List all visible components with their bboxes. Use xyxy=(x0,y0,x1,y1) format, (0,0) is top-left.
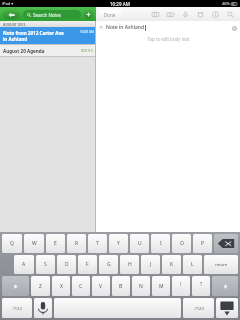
button[interactable]: O xyxy=(172,234,191,253)
staticText: ? xyxy=(200,281,203,288)
button[interactable]: August 20 Agenda xyxy=(0,45,96,56)
staticText: L xyxy=(191,261,194,268)
button[interactable]: S xyxy=(36,255,55,274)
button[interactable]: .?123 xyxy=(2,298,32,318)
staticText: A xyxy=(22,261,26,268)
button[interactable]: Delete xyxy=(196,10,205,19)
button[interactable]: W xyxy=(24,234,44,253)
button[interactable]: Z xyxy=(31,276,50,296)
button[interactable]: Backspace xyxy=(214,234,238,253)
button[interactable]: Search in note xyxy=(226,10,235,19)
staticText: E xyxy=(54,240,57,247)
staticText: Note in Ashland xyxy=(106,24,145,31)
staticText: Z xyxy=(39,283,42,290)
staticText: 10:29 AM xyxy=(80,30,94,34)
staticText: .?123 xyxy=(194,306,204,311)
staticText: August 20 Agenda xyxy=(3,48,81,54)
staticText: P xyxy=(201,240,205,247)
button[interactable]: Hide keyboard xyxy=(216,298,238,318)
button[interactable]: Search Notes xyxy=(23,10,81,19)
staticText: G xyxy=(107,261,111,268)
button[interactable]: J xyxy=(141,255,160,274)
staticText: V xyxy=(99,283,103,290)
button[interactable]: L xyxy=(183,255,202,274)
staticText: D xyxy=(65,261,69,268)
staticText: return xyxy=(215,262,228,268)
button[interactable]: B xyxy=(112,276,130,296)
button[interactable]: New note xyxy=(84,10,93,19)
staticText: M xyxy=(159,283,164,290)
button[interactable]: H xyxy=(120,255,139,274)
button[interactable]: M xyxy=(152,276,170,296)
button[interactable]: R xyxy=(67,234,86,253)
button[interactable]: I xyxy=(151,234,170,253)
button[interactable]: G xyxy=(99,255,118,274)
staticText: R xyxy=(75,240,79,247)
button[interactable]: N xyxy=(132,276,150,296)
button[interactable] xyxy=(54,298,181,318)
button[interactable]: ? xyxy=(192,276,210,296)
button[interactable]: F xyxy=(78,255,97,274)
button[interactable]: Shift xyxy=(212,276,238,296)
button[interactable]: Camera xyxy=(166,10,175,19)
staticText: Q xyxy=(10,240,14,247)
button[interactable]: Dictate xyxy=(34,298,52,318)
button[interactable]: D xyxy=(57,255,76,274)
staticText: Search Notes xyxy=(33,12,61,18)
staticText: Tap to edit body text xyxy=(147,36,190,42)
button[interactable]: C xyxy=(72,276,90,296)
button[interactable]: Note from 2012 Carter Ave xyxy=(0,27,96,44)
staticText: Done xyxy=(104,12,116,18)
button[interactable]: return xyxy=(204,255,238,274)
staticText: in Ashland xyxy=(3,36,28,42)
button[interactable]: Info xyxy=(211,10,220,19)
button[interactable]: Attach xyxy=(151,10,160,19)
staticText: F xyxy=(86,261,89,268)
staticText: U xyxy=(138,240,142,247)
staticText: H xyxy=(128,261,132,268)
staticText: 10:29 AM xyxy=(110,1,130,7)
button[interactable]: Q xyxy=(2,234,22,253)
staticText: . xyxy=(201,288,202,292)
button[interactable]: A xyxy=(14,255,34,274)
staticText: X xyxy=(60,283,63,290)
button[interactable]: T xyxy=(88,234,107,253)
button[interactable]: U xyxy=(130,234,149,253)
staticText: B xyxy=(119,283,123,290)
button[interactable]: Y xyxy=(109,234,128,253)
staticText: N xyxy=(139,283,143,290)
staticText: O xyxy=(180,240,184,247)
button[interactable]: K xyxy=(162,255,181,274)
staticText: T xyxy=(96,240,99,247)
button[interactable]: Shift xyxy=(2,276,29,296)
staticText: W xyxy=(32,240,37,247)
staticText: J xyxy=(150,261,152,268)
staticText: S xyxy=(44,261,47,268)
button[interactable]: Record audio xyxy=(181,10,190,19)
staticText: , xyxy=(181,288,182,292)
button[interactable]: P xyxy=(193,234,212,253)
staticText: C xyxy=(79,283,83,290)
staticText: iPad ▾ xyxy=(2,1,14,6)
button[interactable]: Clear title xyxy=(231,25,237,31)
staticText: K xyxy=(170,261,174,268)
button[interactable]: Back xyxy=(3,10,20,19)
staticText: ! xyxy=(180,281,182,288)
staticText: I xyxy=(160,240,162,247)
button[interactable]: Done xyxy=(99,10,121,19)
staticText: AUGUST 2013 xyxy=(3,22,26,27)
button[interactable]: X xyxy=(52,276,70,296)
button[interactable]: E xyxy=(46,234,65,253)
staticText: Note from 2012 Carter Ave xyxy=(3,30,80,36)
button[interactable]: .?123 xyxy=(183,298,214,318)
staticText: Y xyxy=(117,240,120,247)
button[interactable]: V xyxy=(92,276,110,296)
button[interactable]: ! xyxy=(172,276,190,296)
staticText: .?123 xyxy=(12,306,22,311)
staticText: 8/21/13 xyxy=(81,49,93,53)
staticText: 46% xyxy=(222,1,230,6)
